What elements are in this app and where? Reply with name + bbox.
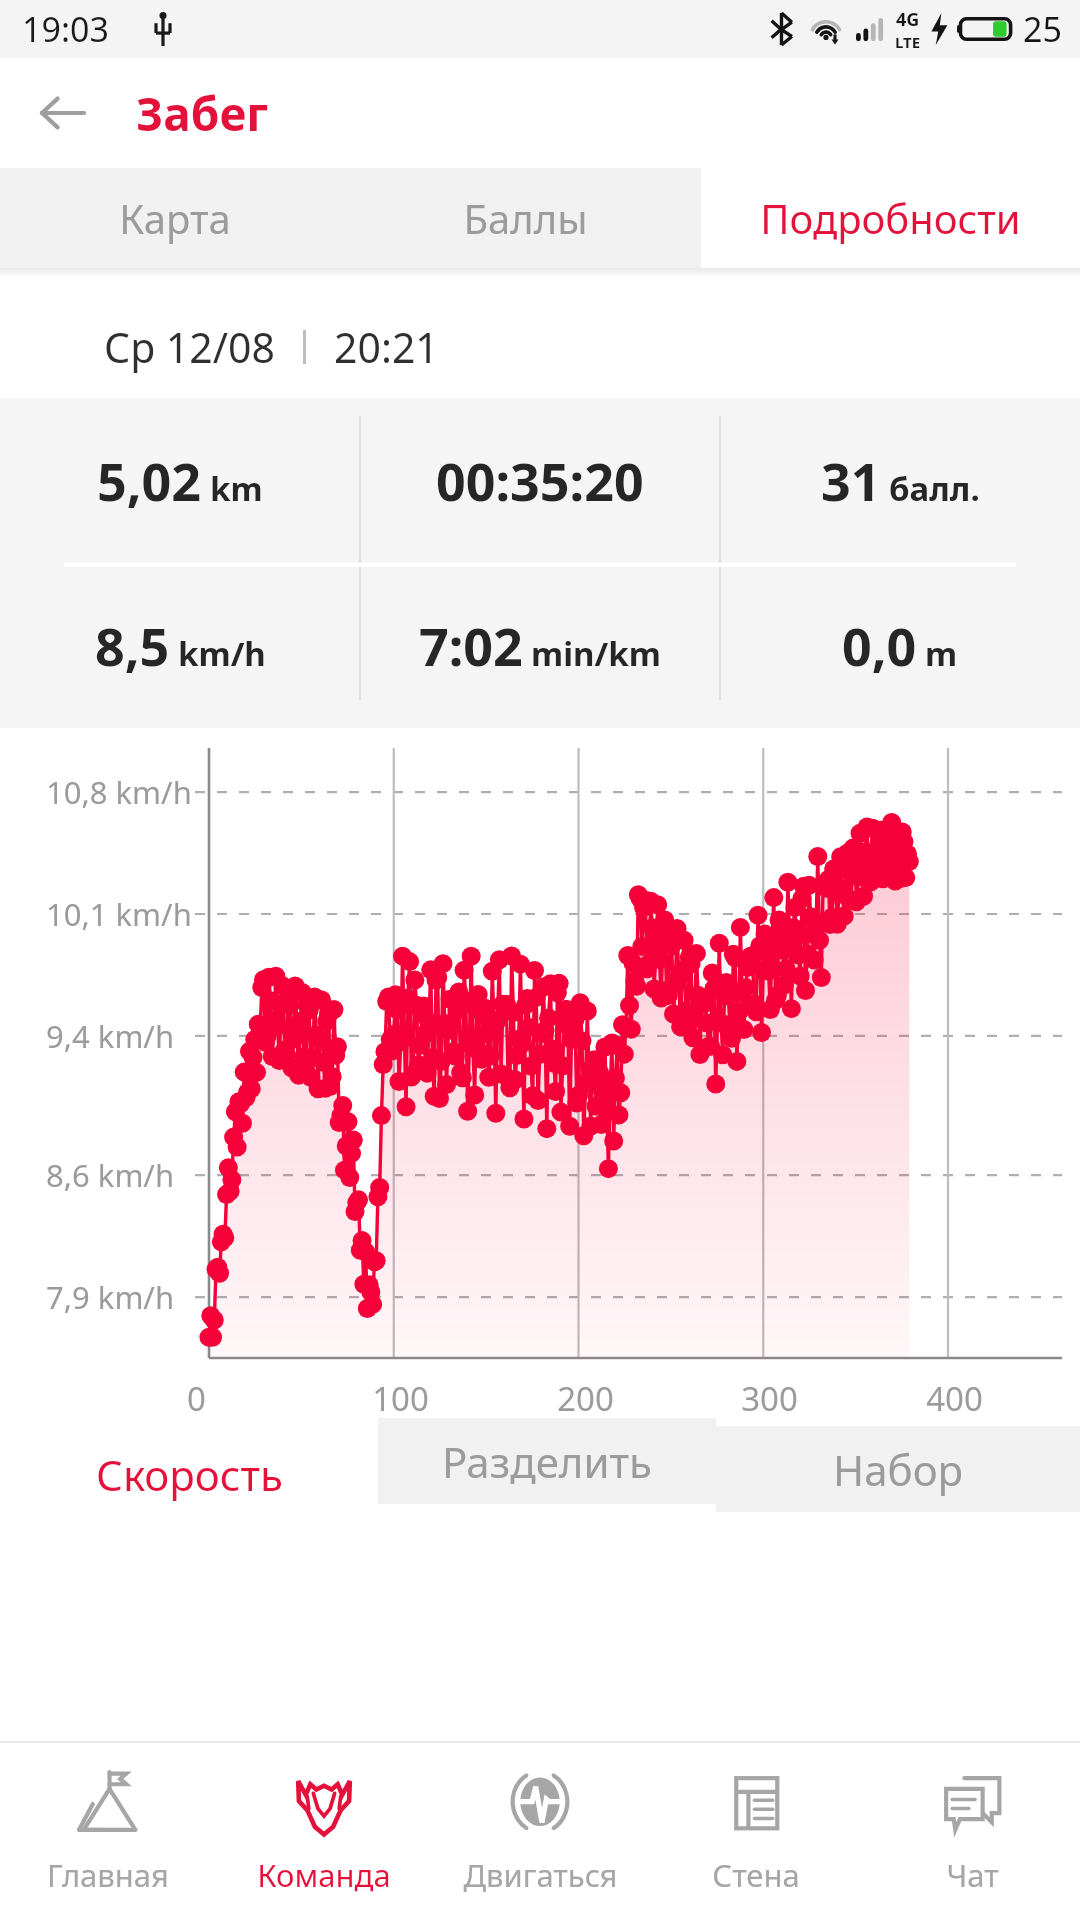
staticText: 8,6 km/h	[46, 1154, 175, 1196]
staticText: 100	[372, 1376, 429, 1421]
staticText: Команда	[257, 1854, 391, 1896]
staticText: Карта	[119, 191, 231, 245]
staticText: 31	[821, 445, 881, 516]
staticText: 9,4 km/h	[46, 1015, 175, 1057]
staticText: Чат	[946, 1854, 999, 1896]
staticText: балл.	[889, 466, 980, 511]
staticText: Двигаться	[463, 1854, 618, 1896]
button[interactable]: Разделить	[378, 1418, 716, 1504]
staticText: 400	[926, 1376, 983, 1421]
staticText: 10,1 km/h	[46, 893, 192, 935]
staticText: min/km	[531, 631, 661, 676]
staticText: km/h	[178, 631, 266, 676]
staticText: 4G	[896, 7, 920, 32]
staticText: 300	[741, 1376, 798, 1421]
staticText: Баллы	[463, 191, 588, 245]
staticText: 20:21	[334, 319, 439, 375]
staticText: 00:35:20	[436, 445, 644, 516]
staticText: m	[925, 631, 958, 676]
button[interactable]: Back	[24, 75, 100, 151]
button[interactable]: Подробности	[701, 168, 1080, 268]
staticText: Подробности	[760, 191, 1021, 245]
staticText: 0,0	[842, 610, 917, 681]
button[interactable]: Команда	[216, 1742, 432, 1920]
staticText: 0	[187, 1376, 206, 1421]
staticText: Главная	[47, 1854, 169, 1896]
button[interactable]: Чат	[864, 1742, 1080, 1920]
button[interactable]: Стена	[648, 1742, 864, 1920]
staticText: Ср 12/08	[104, 319, 275, 375]
staticText: Забег	[136, 82, 269, 145]
staticText: 200	[557, 1376, 614, 1421]
staticText: Разделить	[442, 1433, 653, 1490]
staticText: 7:02	[419, 610, 523, 681]
button[interactable]: Двигаться	[432, 1742, 648, 1920]
button[interactable]: Скорость	[0, 1418, 378, 1530]
staticText: km	[210, 466, 263, 511]
button[interactable]: Карта	[0, 168, 350, 268]
staticText: 19:03	[22, 6, 109, 52]
button[interactable]: Баллы	[350, 168, 701, 268]
button[interactable]: Главная	[0, 1742, 216, 1920]
staticText: 25	[1023, 6, 1062, 52]
staticText: 8,5	[95, 610, 170, 681]
button[interactable]: Набор	[716, 1426, 1080, 1512]
staticText: LTE	[895, 32, 921, 52]
staticText: Набор	[833, 1441, 964, 1498]
staticText: 5,02	[97, 445, 202, 516]
staticText: Скорость	[96, 1446, 283, 1503]
staticText: Стена	[712, 1854, 800, 1896]
staticText: 10,8 km/h	[46, 771, 192, 813]
staticText: 7,9 km/h	[46, 1276, 175, 1318]
